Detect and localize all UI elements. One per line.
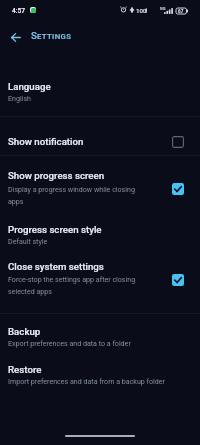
button[interactable]: Language (0, 74, 200, 114)
button[interactable]: Show progress screen (0, 163, 200, 203)
staticText: Close system settings (8, 261, 148, 272)
staticText: 100 (136, 7, 147, 14)
staticText: 4:57 (12, 7, 25, 15)
button[interactable]: Restore (0, 357, 200, 397)
staticText: Progress screen style (8, 224, 188, 235)
button[interactable]: Backup (0, 319, 200, 359)
staticText: Display a progress window while closing … (8, 185, 148, 206)
staticText: ETTINGS (37, 32, 72, 41)
staticText: Language (8, 81, 188, 92)
button[interactable]: Back (5, 22, 27, 52)
staticText: S (31, 30, 37, 41)
button[interactable]: Close system settings (0, 254, 200, 294)
button[interactable]: Enabled (172, 274, 184, 286)
staticText: Export preferences and data to a folder (8, 339, 193, 347)
button[interactable]: Disabled (172, 136, 184, 148)
staticText: English (8, 94, 188, 102)
staticText: 5G (160, 6, 166, 11)
button[interactable]: Show notification (0, 129, 200, 151)
button[interactable]: Progress screen style (0, 217, 200, 257)
staticText: Show progress screen (8, 170, 148, 181)
staticText: 67 (178, 9, 184, 14)
staticText: Restore (8, 364, 193, 375)
staticText: Force-stop the settings app after closin… (8, 275, 148, 296)
staticText: Default style (8, 237, 188, 245)
button[interactable]: Enabled (172, 183, 184, 195)
staticText: Import preferences and data from a backu… (8, 377, 193, 385)
staticText: Backup (8, 326, 193, 337)
staticText: Show notification (8, 136, 188, 147)
